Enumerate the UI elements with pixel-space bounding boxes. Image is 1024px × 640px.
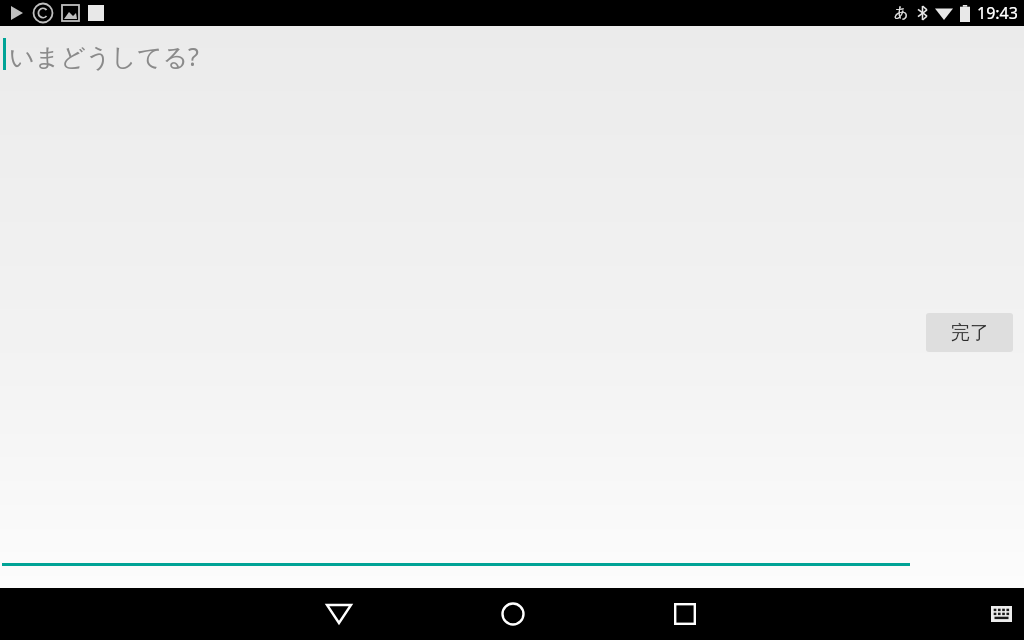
button[interactable]: Back <box>305 588 373 640</box>
button[interactable]: 完了 <box>926 313 1013 352</box>
staticText: 完了 <box>951 321 989 345</box>
button[interactable]: Home <box>479 588 547 640</box>
staticText: いまどうしてる? <box>9 39 199 73</box>
button[interactable]: Switch keyboard <box>978 588 1024 640</box>
staticText: 19:43 <box>977 2 1018 24</box>
button[interactable]: Recent apps <box>651 588 719 640</box>
staticText: あ <box>894 4 909 22</box>
